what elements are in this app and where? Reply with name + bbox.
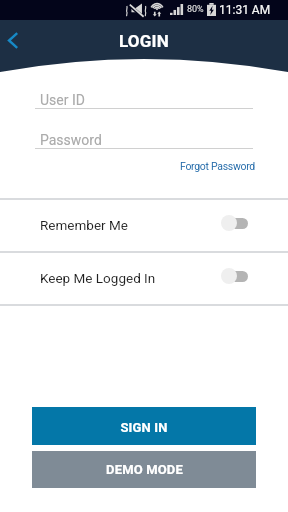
staticText: 80% (187, 4, 204, 15)
staticText: 11:31 AM (219, 3, 271, 17)
staticText: User ID (40, 92, 85, 108)
staticText: LOGIN (119, 31, 169, 51)
button[interactable]: Remember Me (0, 198, 288, 251)
staticText: SIGN IN (120, 420, 168, 435)
staticText: Keep Me Logged In (40, 270, 156, 286)
button[interactable]: Forgot Password (155, 157, 255, 174)
button[interactable]: SIGN IN (32, 407, 256, 445)
staticText: Remember Me (40, 217, 128, 233)
staticText: DEMO MODE (106, 462, 183, 477)
staticText: Password (40, 132, 102, 148)
staticText: Forgot Password (180, 160, 255, 172)
button[interactable]: DEMO MODE (32, 451, 256, 488)
button[interactable]: Keep Me Logged In (0, 251, 288, 304)
button[interactable]: Back (0, 27, 26, 53)
